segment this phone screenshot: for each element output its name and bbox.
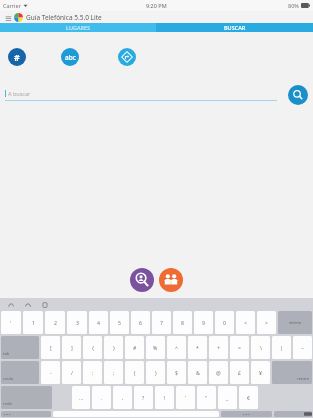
button[interactable]: Buscar — [288, 85, 308, 105]
button[interactable]: Números — [8, 48, 26, 66]
button[interactable]: return — [272, 361, 312, 384]
staticText: @ — [216, 369, 221, 376]
button[interactable]: + — [209, 336, 228, 359]
button[interactable]: ' — [176, 386, 195, 409]
button[interactable]: ' — [1, 311, 21, 334]
staticText: | — [280, 344, 283, 351]
button[interactable]: 4 — [89, 311, 108, 334]
button[interactable]: ¥ — [251, 361, 270, 384]
button[interactable]: _ — [218, 386, 237, 409]
button[interactable]: ^ — [167, 336, 186, 359]
button[interactable]: ABC — [1, 411, 51, 417]
staticText: 5 — [118, 319, 121, 326]
button[interactable]: { — [83, 336, 102, 359]
staticText: } — [113, 344, 115, 351]
staticText: ¥ — [259, 369, 262, 376]
button[interactable]: < — [236, 311, 255, 334]
button[interactable]: | — [272, 336, 291, 359]
staticText: € — [247, 394, 250, 401]
staticText: ABC — [242, 413, 251, 415]
button[interactable]: ... — [72, 386, 90, 409]
button[interactable]: 2 — [45, 311, 65, 334]
staticText: ! — [164, 394, 166, 401]
staticText: ^ — [175, 344, 178, 351]
button[interactable]: £ — [230, 361, 249, 384]
button[interactable]: undo — [1, 361, 39, 384]
staticText: \ — [260, 344, 262, 351]
staticText: - — [50, 369, 52, 376]
staticText: 6 — [139, 319, 142, 326]
button[interactable]: # — [125, 336, 144, 359]
button[interactable]: 5 — [110, 311, 129, 334]
staticText: BUSCAR — [224, 24, 246, 31]
button[interactable]: ~ — [293, 336, 312, 359]
button[interactable]: Buscar persona — [130, 268, 154, 292]
button[interactable]: € — [239, 386, 258, 409]
button[interactable]: Grupos — [159, 268, 183, 292]
staticText: ' — [185, 394, 187, 401]
button[interactable]: : — [83, 361, 102, 384]
button[interactable]: 8 — [173, 311, 192, 334]
staticText: ( — [134, 369, 136, 376]
button[interactable]: ) — [146, 361, 165, 384]
staticText: LUGARES — [66, 24, 91, 31]
staticText: & — [196, 369, 200, 376]
button[interactable]: } — [104, 336, 123, 359]
staticText: . — [101, 394, 103, 401]
staticText: 1 — [32, 319, 35, 326]
staticText: ... — [79, 394, 84, 401]
staticText: ] — [71, 344, 73, 351]
button[interactable]: @ — [209, 361, 228, 384]
button[interactable]: ( — [125, 361, 144, 384]
button[interactable]: Deshacer — [6, 300, 15, 309]
staticText: ~ — [301, 344, 304, 351]
button[interactable]: . — [92, 386, 111, 409]
button[interactable]: ! — [155, 386, 174, 409]
staticText: 0 — [223, 319, 226, 326]
button[interactable]: % — [146, 336, 165, 359]
button[interactable]: * — [188, 336, 207, 359]
button[interactable]: Pegar — [40, 300, 49, 309]
button[interactable]: > — [257, 311, 276, 334]
button[interactable]: / — [62, 361, 81, 384]
button[interactable]: LUGARES — [0, 23, 156, 32]
button[interactable]: [ — [41, 336, 60, 359]
button[interactable]: 7 — [152, 311, 171, 334]
button[interactable]: delete — [278, 311, 312, 334]
staticText: + — [217, 344, 220, 351]
button[interactable]: 6 — [131, 311, 150, 334]
button[interactable]: 3 — [67, 311, 87, 334]
button[interactable]: Menu — [4, 14, 12, 22]
button[interactable]: Rutas — [118, 48, 136, 66]
button[interactable]: & — [188, 361, 207, 384]
staticText: # — [133, 344, 137, 351]
staticText: 80% — [288, 2, 299, 9]
button[interactable]: , — [113, 386, 132, 409]
button[interactable]: 0 — [215, 311, 234, 334]
staticText: 3 — [76, 319, 79, 326]
button[interactable]: " — [197, 386, 216, 409]
button[interactable]: ; — [104, 361, 123, 384]
button[interactable]: = — [230, 336, 249, 359]
button[interactable]: ? — [134, 386, 153, 409]
button[interactable]: A buscar — [5, 90, 277, 101]
staticText: ? — [142, 394, 145, 401]
staticText: < — [244, 319, 247, 326]
button[interactable]: tab — [1, 336, 39, 359]
button[interactable]: \ — [251, 336, 270, 359]
staticText: tab — [3, 351, 10, 357]
button[interactable]: 9 — [194, 311, 213, 334]
button[interactable] — [274, 411, 312, 417]
button[interactable]: - — [41, 361, 60, 384]
button[interactable]: redo — [1, 386, 52, 409]
button[interactable]: Alfabético — [61, 48, 79, 66]
button[interactable]: 1 — [23, 311, 43, 334]
button[interactable]: ABC — [221, 411, 272, 417]
button[interactable]: BUSCAR — [156, 23, 313, 32]
button[interactable]: $ — [167, 361, 186, 384]
staticText: Carrier — [3, 2, 21, 9]
staticText: 2 — [54, 319, 57, 326]
button[interactable]: ] — [62, 336, 81, 359]
button[interactable]: Rehacer — [23, 300, 32, 309]
